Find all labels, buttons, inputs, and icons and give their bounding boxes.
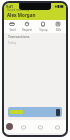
staticText: Send: [9, 28, 16, 32]
staticText: Alex Morgan: [7, 12, 36, 18]
staticText: Good morning: [7, 8, 29, 12]
button[interactable]: Send: [5, 21, 19, 32]
button[interactable]: [8, 107, 62, 117]
staticText: Today: [8, 41, 17, 45]
staticText: Bills: [56, 28, 61, 32]
button[interactable]: Top up: [36, 21, 50, 32]
button[interactable]: Bills: [51, 21, 65, 32]
staticText: 9:41: [6, 4, 13, 9]
button[interactable]: Request: [20, 21, 34, 32]
button[interactable]: Cards: [15, 122, 32, 132]
staticText: Request: [22, 28, 32, 32]
button[interactable]: Profile: [49, 122, 66, 132]
button[interactable]: Stats: [32, 122, 49, 132]
staticText: Top up: [39, 28, 48, 32]
button[interactable]: Home: [6, 123, 13, 130]
staticText: Transactions: [8, 34, 30, 39]
